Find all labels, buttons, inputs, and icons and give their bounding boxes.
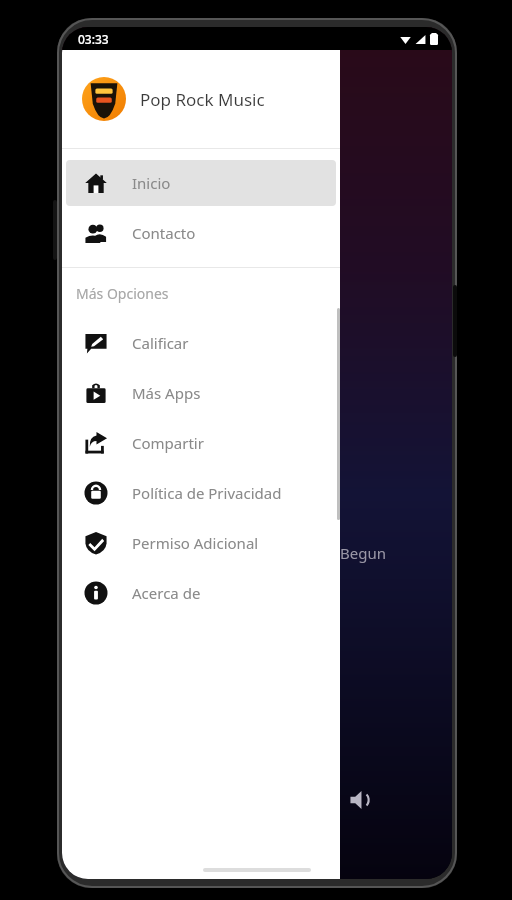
staticText: Inicio: [132, 173, 171, 193]
staticText: Acerca de: [132, 583, 201, 603]
staticText: Permiso Adicional: [132, 533, 259, 553]
button[interactable]: Más Apps: [66, 370, 336, 416]
staticText: Más Apps: [132, 383, 201, 403]
staticText: Contacto: [132, 223, 196, 243]
staticText: Pop Rock Music: [140, 88, 265, 111]
button[interactable]: Compartir: [66, 420, 336, 466]
button[interactable]: Volume: [344, 783, 378, 817]
button[interactable]: Calificar: [66, 320, 336, 366]
staticText: 03:33: [78, 31, 109, 47]
button[interactable]: Contacto: [66, 210, 336, 256]
button[interactable]: Permiso Adicional: [66, 520, 336, 566]
staticText: Begun: [340, 543, 386, 563]
button[interactable]: Inicio: [66, 160, 336, 206]
button[interactable]: Acerca de: [66, 570, 336, 616]
staticText: Calificar: [132, 333, 189, 353]
staticText: Compartir: [132, 433, 204, 453]
staticText: Política de Privacidad: [132, 483, 282, 503]
button[interactable]: Pop Rock Music: [62, 50, 340, 148]
staticText: Más Opciones: [76, 284, 169, 303]
button[interactable]: Política de Privacidad: [66, 470, 336, 516]
